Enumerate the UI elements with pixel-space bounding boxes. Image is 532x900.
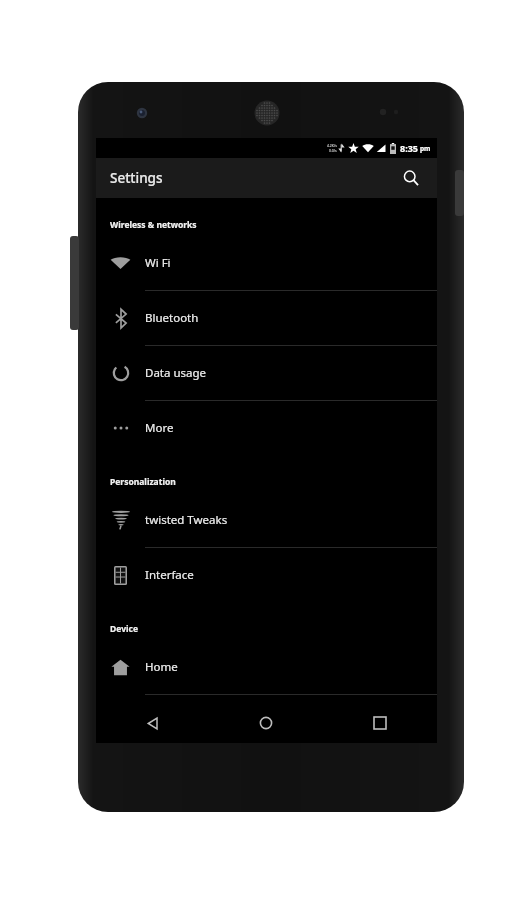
button[interactable]: Interface	[96, 548, 437, 602]
button[interactable]: Back	[96, 703, 209, 743]
staticText: Interface	[145, 567, 194, 583]
button[interactable]: Recents	[323, 703, 437, 743]
staticText: Wi Fi	[145, 255, 171, 271]
button[interactable]: Data usage	[96, 346, 437, 400]
button[interactable]: More	[96, 401, 437, 455]
button[interactable]: Wi Fi	[96, 236, 437, 290]
staticText: Wireless & networks	[110, 219, 197, 231]
staticText: Personalization	[110, 476, 176, 488]
button[interactable]: twisted Tweaks	[96, 493, 437, 547]
button[interactable]: Home	[96, 640, 437, 694]
staticText: pm	[420, 144, 431, 153]
button[interactable]: Home	[209, 703, 323, 743]
staticText: Bluetooth	[145, 310, 199, 326]
staticText: 0.0/s	[329, 148, 337, 153]
staticText: Device	[110, 623, 138, 635]
staticText: Home	[145, 659, 178, 675]
button[interactable]: Search	[395, 162, 427, 194]
staticText: 8:35	[400, 142, 418, 154]
button[interactable]: Bluetooth	[96, 291, 437, 345]
staticText: More	[145, 420, 174, 436]
staticText: twisted Tweaks	[145, 512, 228, 528]
staticText: Settings	[110, 169, 163, 187]
staticText: Data usage	[145, 365, 207, 381]
staticText: 4.2K/s	[327, 143, 337, 148]
